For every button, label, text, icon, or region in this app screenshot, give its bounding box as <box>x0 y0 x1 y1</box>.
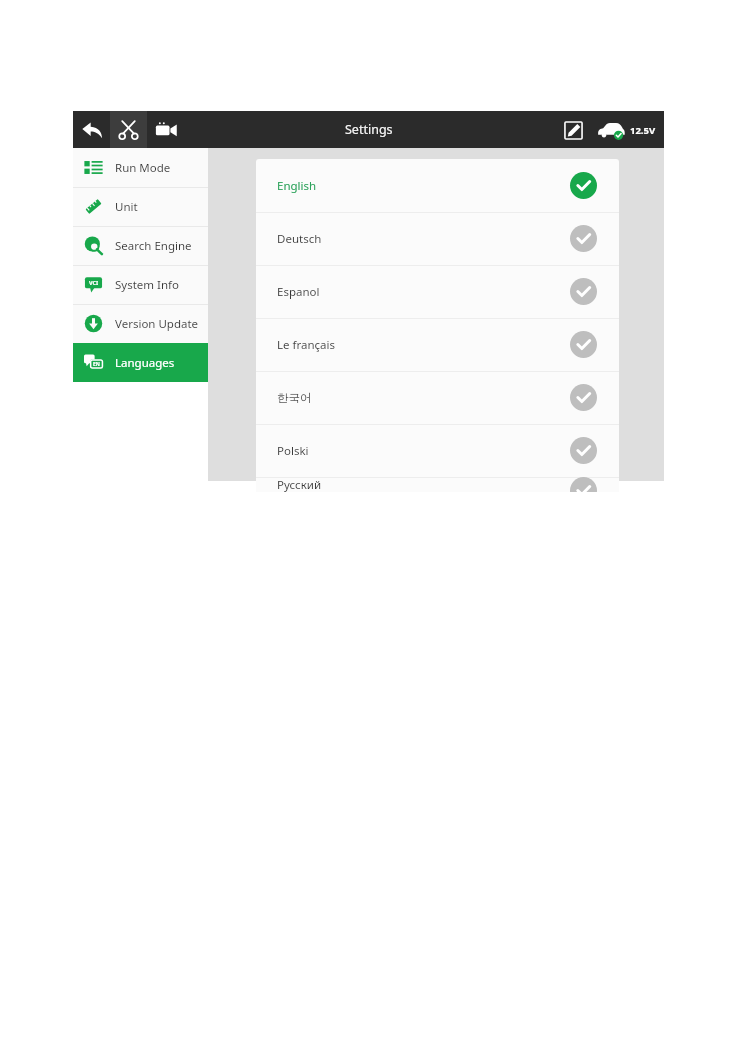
staticText: 12.5V <box>630 124 656 137</box>
button[interactable]: 한국어 <box>256 371 619 424</box>
button[interactable]: Back <box>73 111 110 148</box>
staticText: Le français <box>277 337 335 353</box>
button[interactable]: Search Engine <box>73 226 208 265</box>
button[interactable]: Espanol <box>256 265 619 318</box>
button[interactable]: Deutsch <box>256 212 619 265</box>
staticText: 한국어 <box>277 391 312 405</box>
staticText: Unit <box>115 199 138 215</box>
staticText: English <box>277 178 317 194</box>
staticText: VCI <box>89 279 99 286</box>
staticText: Languages <box>115 355 175 371</box>
button[interactable]: Le français <box>256 318 619 371</box>
staticText: Search Engine <box>115 238 192 254</box>
staticText: EN <box>93 361 100 368</box>
staticText: Run Mode <box>115 160 171 176</box>
button[interactable]: EN <box>73 343 208 382</box>
staticText: Version Update <box>115 316 199 332</box>
staticText: Русский <box>277 477 322 492</box>
button[interactable]: Unit <box>73 187 208 226</box>
button[interactable]: Polski <box>256 424 619 477</box>
button[interactable]: Record video <box>147 111 184 148</box>
button[interactable]: Русский <box>256 477 619 492</box>
staticText: Espanol <box>277 284 320 300</box>
staticText: Settings <box>345 121 393 138</box>
button[interactable]: English <box>256 159 619 212</box>
button[interactable]: Vehicle connection status <box>596 118 626 142</box>
button[interactable]: Screenshot <box>110 111 147 148</box>
staticText: System Info <box>115 277 179 293</box>
button[interactable]: Run Mode <box>73 148 208 187</box>
button[interactable]: VCI <box>73 265 208 304</box>
button[interactable]: Version Update <box>73 304 208 343</box>
staticText: Deutsch <box>277 231 322 247</box>
staticText: Polski <box>277 443 309 459</box>
button[interactable]: Edit <box>558 115 588 145</box>
